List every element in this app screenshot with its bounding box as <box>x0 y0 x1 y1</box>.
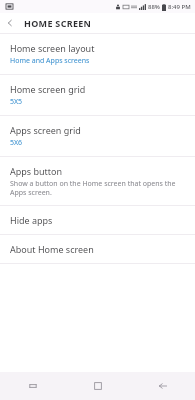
button[interactable]: Home screen grid <box>0 75 195 115</box>
button[interactable]: Home <box>65 372 130 400</box>
button[interactable]: Apps screen grid <box>0 116 195 156</box>
button[interactable]: Hide apps <box>0 206 195 234</box>
button[interactable]: Back <box>130 372 195 400</box>
staticText: Home screen layout <box>10 42 95 54</box>
button[interactable]: Apps button <box>0 157 195 205</box>
staticText: 88% <box>148 3 160 11</box>
staticText: Apps button <box>10 165 63 177</box>
staticText: Show a button on the Home screen that op… <box>10 179 183 197</box>
staticText: Hide apps <box>10 214 53 226</box>
staticText: 5X6 <box>10 138 23 148</box>
button[interactable]: Recents <box>0 372 65 400</box>
staticText: 5X5 <box>10 97 23 107</box>
button[interactable]: Home screen layout <box>0 34 195 74</box>
button[interactable]: Back <box>0 13 20 33</box>
staticText: Home and Apps screens <box>10 56 90 66</box>
staticText: Apps screen grid <box>10 124 81 136</box>
staticText: HOME SCREEN <box>24 17 92 29</box>
button[interactable]: About Home screen <box>0 235 195 263</box>
staticText: Home screen grid <box>10 83 86 95</box>
staticText: 8:49 PM <box>168 3 191 11</box>
staticText: About Home screen <box>10 243 94 255</box>
